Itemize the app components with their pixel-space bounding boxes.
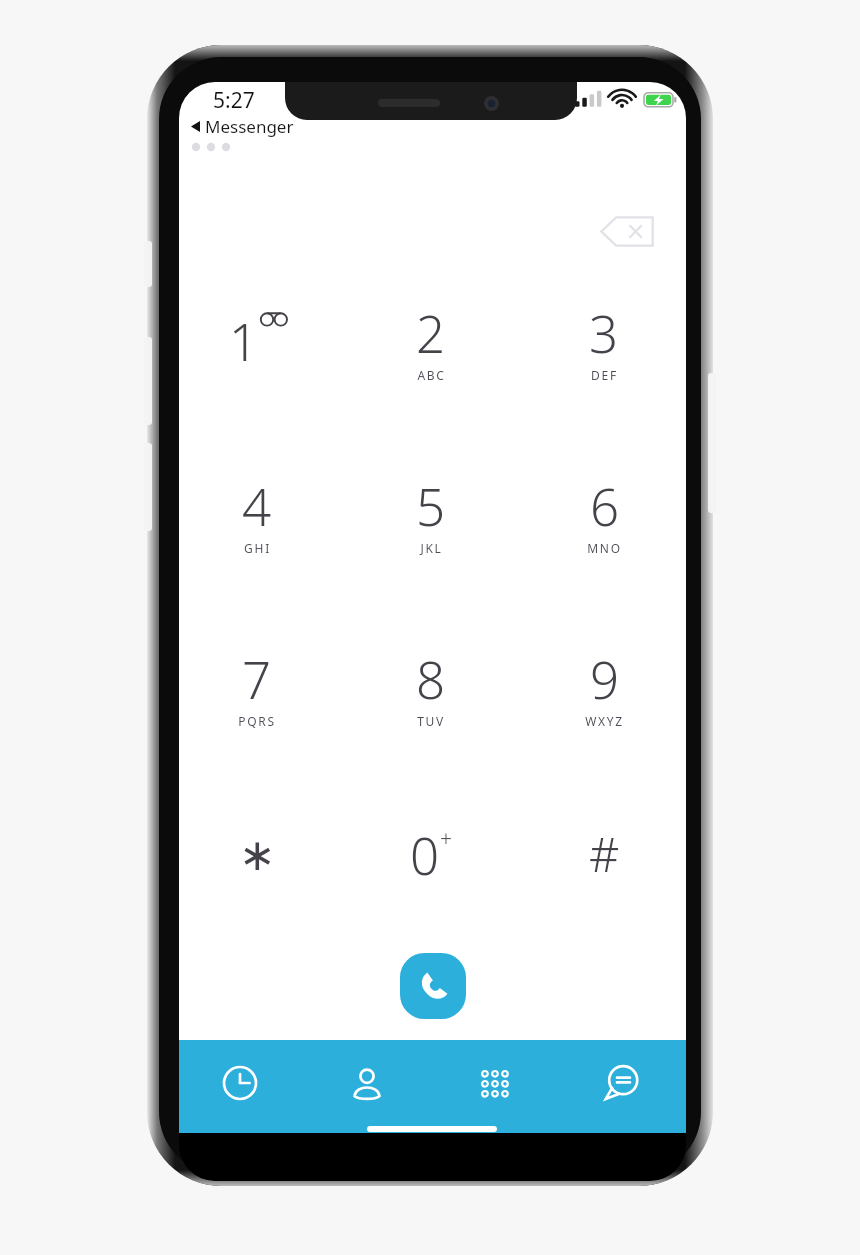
button[interactable]: Call <box>400 953 466 1019</box>
staticText: 5:27 <box>213 86 255 115</box>
staticText: TUV <box>417 713 445 729</box>
button[interactable]: # <box>538 802 670 906</box>
button[interactable]: 3 <box>538 288 670 392</box>
staticText: 6 <box>590 471 620 540</box>
staticText: 0 <box>410 820 440 889</box>
staticText: ABC <box>417 367 446 383</box>
button[interactable]: Recents <box>196 1040 284 1133</box>
staticText: MNO <box>587 540 622 556</box>
staticText: 1 <box>229 306 259 375</box>
button[interactable]: 5 <box>365 461 497 565</box>
staticText: DEF <box>591 367 618 383</box>
staticText: GHI <box>244 540 271 556</box>
staticText: 4 <box>242 471 272 540</box>
staticText: + <box>440 825 452 854</box>
staticText: ∗ <box>239 829 276 880</box>
button[interactable]: 2 <box>365 288 497 392</box>
button[interactable]: Messenger <box>187 113 298 140</box>
button[interactable]: 1 <box>191 288 323 392</box>
button[interactable]: Keypad <box>451 1040 539 1133</box>
button[interactable]: 4 <box>191 461 323 565</box>
staticText: WXYZ <box>585 713 624 729</box>
staticText: Messenger <box>205 115 294 138</box>
staticText: 2 <box>416 298 446 367</box>
button[interactable]: 9 <box>538 634 670 738</box>
button[interactable]: Messages <box>578 1040 666 1133</box>
button[interactable]: ∗ <box>191 802 323 906</box>
button[interactable]: Contacts <box>323 1040 411 1133</box>
staticText: # <box>589 822 620 886</box>
staticText: 9 <box>590 644 620 713</box>
button[interactable]: 8 <box>365 634 497 738</box>
button[interactable]: 6 <box>538 461 670 565</box>
staticText: PQRS <box>238 713 276 729</box>
button[interactable]: Backspace <box>589 208 665 254</box>
button[interactable]: 7 <box>191 634 323 738</box>
staticText: 7 <box>242 644 272 713</box>
button[interactable]: 0 <box>365 802 497 906</box>
staticText: 8 <box>416 644 446 713</box>
staticText: 3 <box>589 298 619 367</box>
staticText: JKL <box>420 540 443 556</box>
staticText: 5 <box>416 471 446 540</box>
